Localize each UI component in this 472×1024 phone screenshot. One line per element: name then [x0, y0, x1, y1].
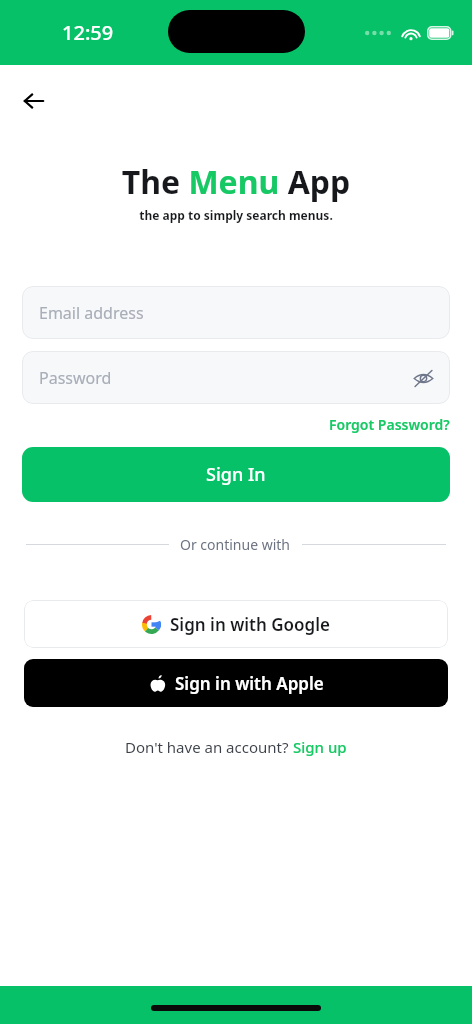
- button[interactable]: Sign up: [293, 737, 347, 757]
- staticText: Sign up: [293, 737, 347, 757]
- staticText: The Menu App: [0, 160, 472, 204]
- button[interactable]: Sign In: [22, 447, 450, 502]
- button[interactable]: Password: [22, 351, 450, 404]
- staticText: Sign in with Apple: [175, 672, 324, 695]
- button[interactable]: Show password: [404, 359, 442, 397]
- staticText: the app to simply search menus.: [0, 207, 472, 223]
- button[interactable]: Sign in with Apple: [24, 659, 448, 707]
- staticText: Sign In: [206, 462, 266, 487]
- staticText: 12:59: [62, 19, 114, 46]
- staticText: Password: [39, 367, 112, 389]
- staticText: Don't have an account?: [125, 737, 293, 757]
- button[interactable]: Forgot Password?: [329, 413, 472, 436]
- button[interactable]: Back: [12, 79, 56, 123]
- staticText: Forgot Password?: [329, 415, 450, 434]
- button[interactable]: Email address: [22, 286, 450, 339]
- staticText: Sign in with Google: [170, 613, 330, 636]
- staticText: Email address: [39, 302, 144, 324]
- button[interactable]: Sign in with Google: [24, 600, 448, 648]
- staticText: Or continue with: [180, 535, 291, 554]
